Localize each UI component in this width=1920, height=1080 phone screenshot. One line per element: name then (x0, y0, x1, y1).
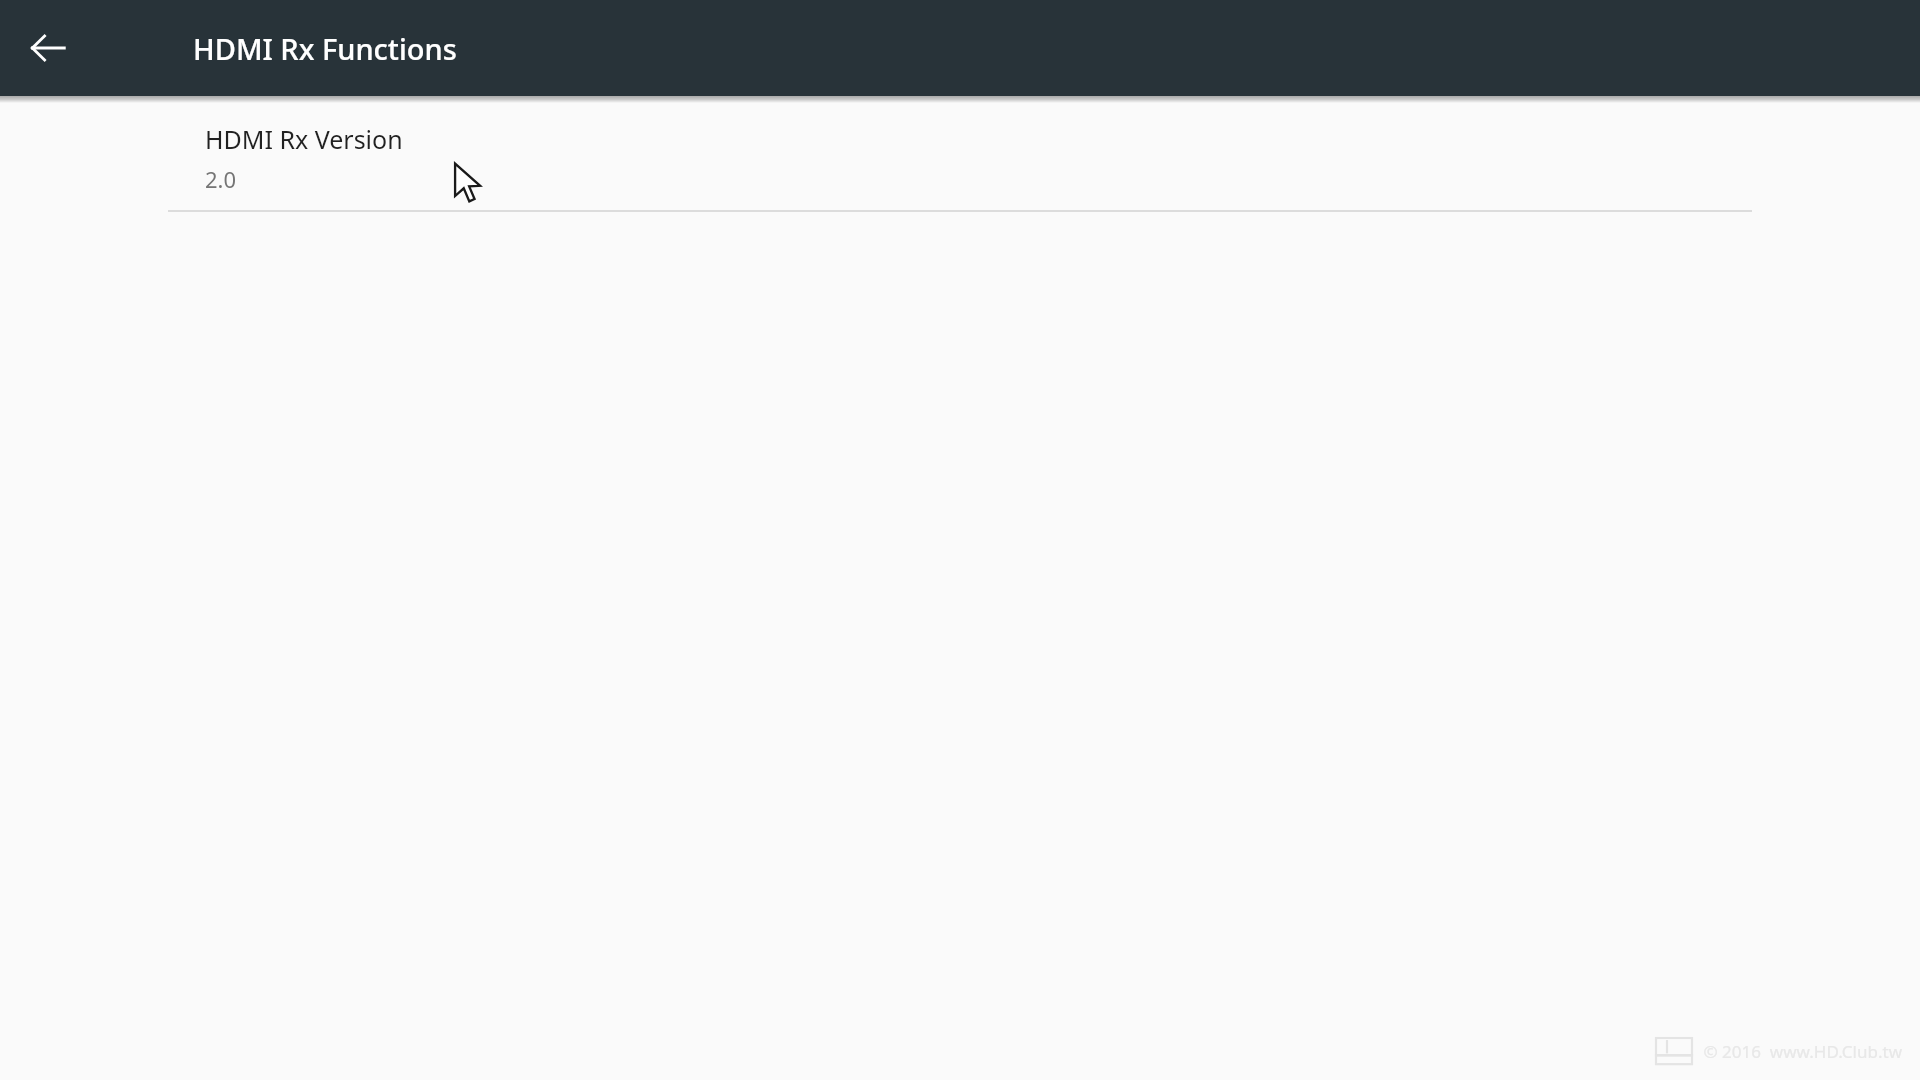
staticText: HDMI Rx Version (205, 122, 403, 156)
button[interactable]: Back (0, 0, 96, 96)
staticText: 2.0 (205, 164, 237, 194)
button[interactable]: HDMI Rx Version (0, 103, 1920, 212)
staticText: HDMI Rx Functions (193, 29, 457, 68)
staticText: © 2016 www.HD.Club.tw (1703, 1040, 1902, 1063)
